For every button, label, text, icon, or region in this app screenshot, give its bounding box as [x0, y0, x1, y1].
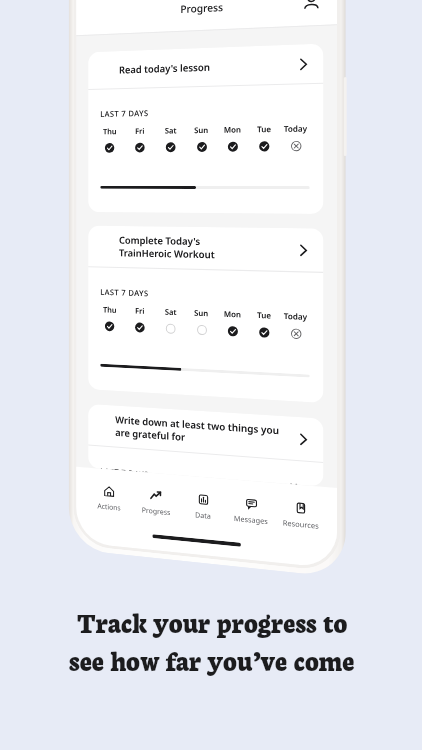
- button[interactable]: Resources: [276, 494, 326, 538]
- staticText: Write down at least two things you are g…: [115, 413, 290, 451]
- staticText: Mon: [224, 124, 242, 136]
- staticText: Progress: [180, 0, 224, 16]
- staticText: Complete Today's TrainHeroic Workout: [119, 234, 290, 263]
- staticText: Tue: [257, 310, 271, 322]
- staticText: Read today's lesson: [119, 58, 290, 76]
- button[interactable]: Messages: [227, 490, 276, 533]
- staticText: Fri: [135, 126, 145, 137]
- button[interactable]: Complete Today's TrainHeroic Workout: [88, 226, 323, 403]
- staticText: Resources: [283, 517, 319, 531]
- button[interactable]: Write down at least two things you are g…: [88, 404, 323, 487]
- staticText: Thu: [103, 305, 117, 316]
- staticText: Data: [195, 509, 211, 521]
- button[interactable]: Read today's lesson: [88, 43, 323, 214]
- staticText: Today: [284, 311, 308, 323]
- staticText: Today: [284, 123, 308, 135]
- staticText: see how far you’ve come: [69, 641, 355, 678]
- staticText: Sat: [165, 307, 177, 318]
- button[interactable]: Account: [302, 0, 320, 11]
- button[interactable]: Actions: [86, 478, 132, 519]
- staticText: LAST 7 DAYS: [100, 286, 149, 298]
- staticText: Sun: [194, 125, 209, 136]
- button[interactable]: Data: [179, 486, 227, 528]
- staticText: Sun: [194, 308, 209, 319]
- staticText: Tue: [257, 124, 271, 135]
- staticText: Progress: [142, 505, 171, 517]
- staticText: Mon: [224, 309, 242, 320]
- button[interactable]: Progress: [132, 482, 179, 524]
- staticText: Messages: [234, 513, 268, 526]
- staticText: LAST 7 DAYS: [100, 107, 149, 119]
- staticText: Fri: [135, 306, 145, 317]
- staticText: Sat: [165, 125, 177, 136]
- staticText: Actions: [97, 501, 121, 512]
- staticText: LAST 7 DAYS: [100, 465, 149, 473]
- staticText: Thu: [103, 126, 117, 137]
- staticText: Track your progress to: [77, 603, 348, 640]
